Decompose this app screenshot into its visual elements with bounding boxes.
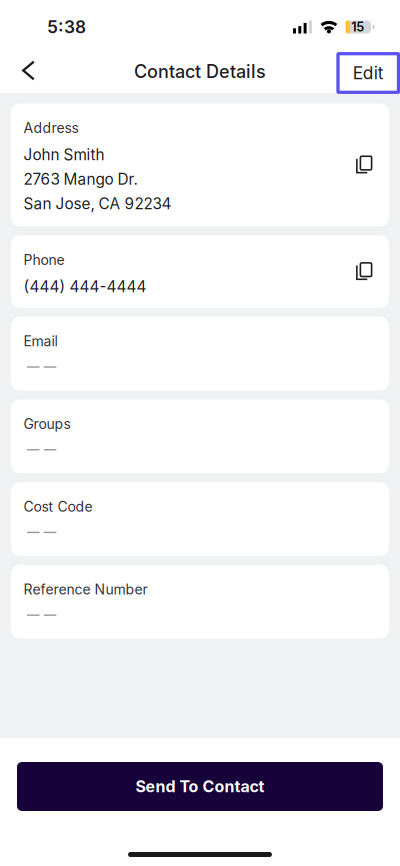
staticText: Groups	[23, 415, 70, 432]
button[interactable]: Back	[6, 48, 50, 92]
staticText: 15	[351, 19, 364, 35]
button[interactable]: Send To Contact	[17, 762, 383, 811]
staticText: Send To Contact	[135, 777, 264, 796]
staticText: Contact Details	[134, 61, 266, 82]
staticText: Phone	[23, 251, 64, 268]
staticText: San Jose, CA 92234	[23, 194, 171, 213]
staticText: (444) 444-4444	[23, 277, 146, 296]
button[interactable]: Copy Phone	[348, 256, 380, 288]
staticText: Address	[23, 119, 78, 136]
staticText: 2763 Mango Dr.	[23, 170, 137, 189]
button[interactable]: Edit	[338, 54, 398, 92]
staticText: Edit	[353, 62, 384, 83]
staticText: Email	[23, 333, 57, 350]
staticText: Reference Number	[23, 581, 147, 598]
staticText: Cost Code	[23, 498, 92, 515]
staticText: John Smith	[23, 145, 104, 164]
button[interactable]: Copy Address	[348, 149, 380, 181]
staticText: 5:38	[47, 16, 86, 37]
